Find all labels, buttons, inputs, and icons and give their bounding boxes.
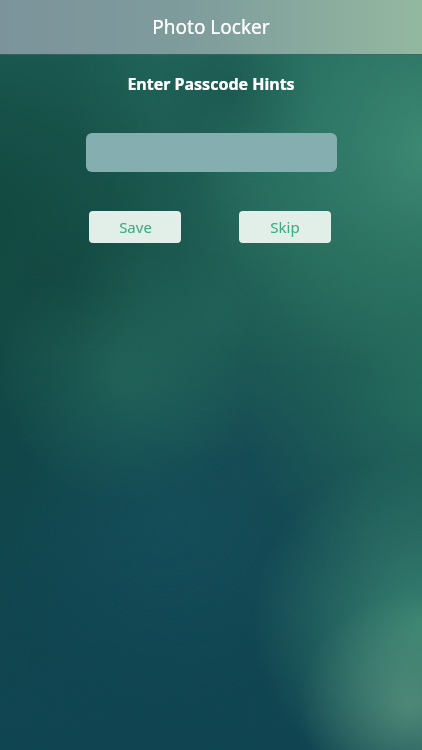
button[interactable]: Passcode hint text field: [86, 133, 337, 172]
button[interactable]: Skip: [239, 211, 331, 243]
staticText: Skip: [270, 217, 300, 237]
staticText: Photo Locker: [152, 14, 270, 40]
staticText: Save: [119, 217, 152, 237]
button[interactable]: Save: [89, 211, 181, 243]
staticText: Enter Passcode Hints: [127, 73, 295, 95]
